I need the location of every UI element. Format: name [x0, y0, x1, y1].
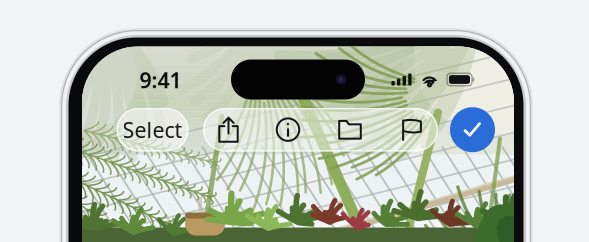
button[interactable]: Done [450, 107, 495, 152]
button[interactable]: Photo actions [203, 108, 438, 151]
staticText: Select [122, 116, 182, 144]
button[interactable]: Select [116, 108, 188, 151]
staticText: 9:41 [139, 66, 181, 94]
